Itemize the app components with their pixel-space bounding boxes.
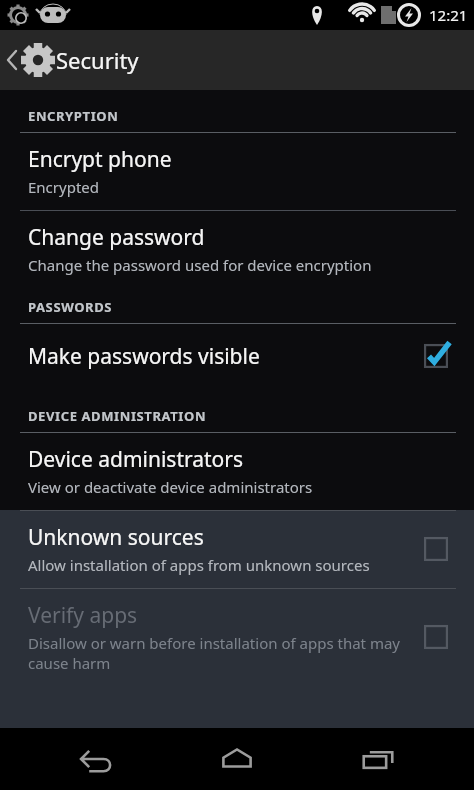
button[interactable]: Verify apps [416,617,456,657]
staticText: Unknown sources [28,523,204,552]
staticText: Device administrators [28,445,244,474]
button[interactable]: Recent apps [333,728,423,790]
button[interactable]: Verify apps [0,589,474,686]
staticText: Verify apps [28,601,138,630]
button[interactable]: Unknown sources [416,529,456,569]
button[interactable]: Make passwords visible [0,324,474,389]
staticText: Change the password used for device encr… [28,255,372,275]
button[interactable]: Change password [0,211,474,288]
staticText: Encrypted [28,177,99,197]
button[interactable]: Make passwords visible [416,336,456,376]
staticText: DEVICE ADMINISTRATION [28,407,207,425]
staticText: Change password [28,223,205,252]
button[interactable]: Back [51,728,141,790]
button[interactable]: Home [192,728,282,790]
staticText: Disallow or warn before installation of … [28,633,404,673]
staticText: Encrypt phone [28,145,172,174]
staticText: Make passwords visible [28,342,260,371]
staticText: Security [56,45,139,75]
staticText: ENCRYPTION [28,107,119,125]
staticText: Allow installation of apps from unknown … [28,555,370,575]
button[interactable]: Unknown sources [0,511,474,588]
staticText: View or deactivate device administrators [28,477,313,497]
button[interactable]: Navigate up, Security [0,30,474,90]
button[interactable]: Encrypt phone [0,133,474,210]
staticText: PASSWORDS [28,298,113,316]
staticText: 12:21 [429,5,468,25]
button[interactable]: Device administrators [0,433,474,510]
